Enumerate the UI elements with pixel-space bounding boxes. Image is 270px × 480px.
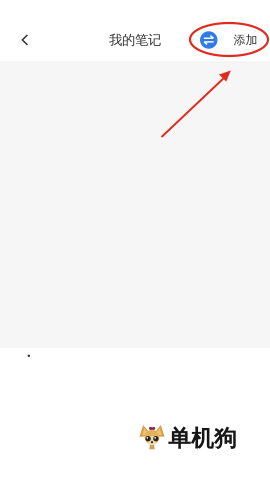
button[interactable]: 添加 <box>200 25 257 55</box>
staticText: 添加 <box>233 33 257 47</box>
button[interactable]: Back <box>8 21 42 59</box>
staticText: 我的笔记 <box>109 32 161 48</box>
staticText: 单机狗 <box>168 424 237 452</box>
